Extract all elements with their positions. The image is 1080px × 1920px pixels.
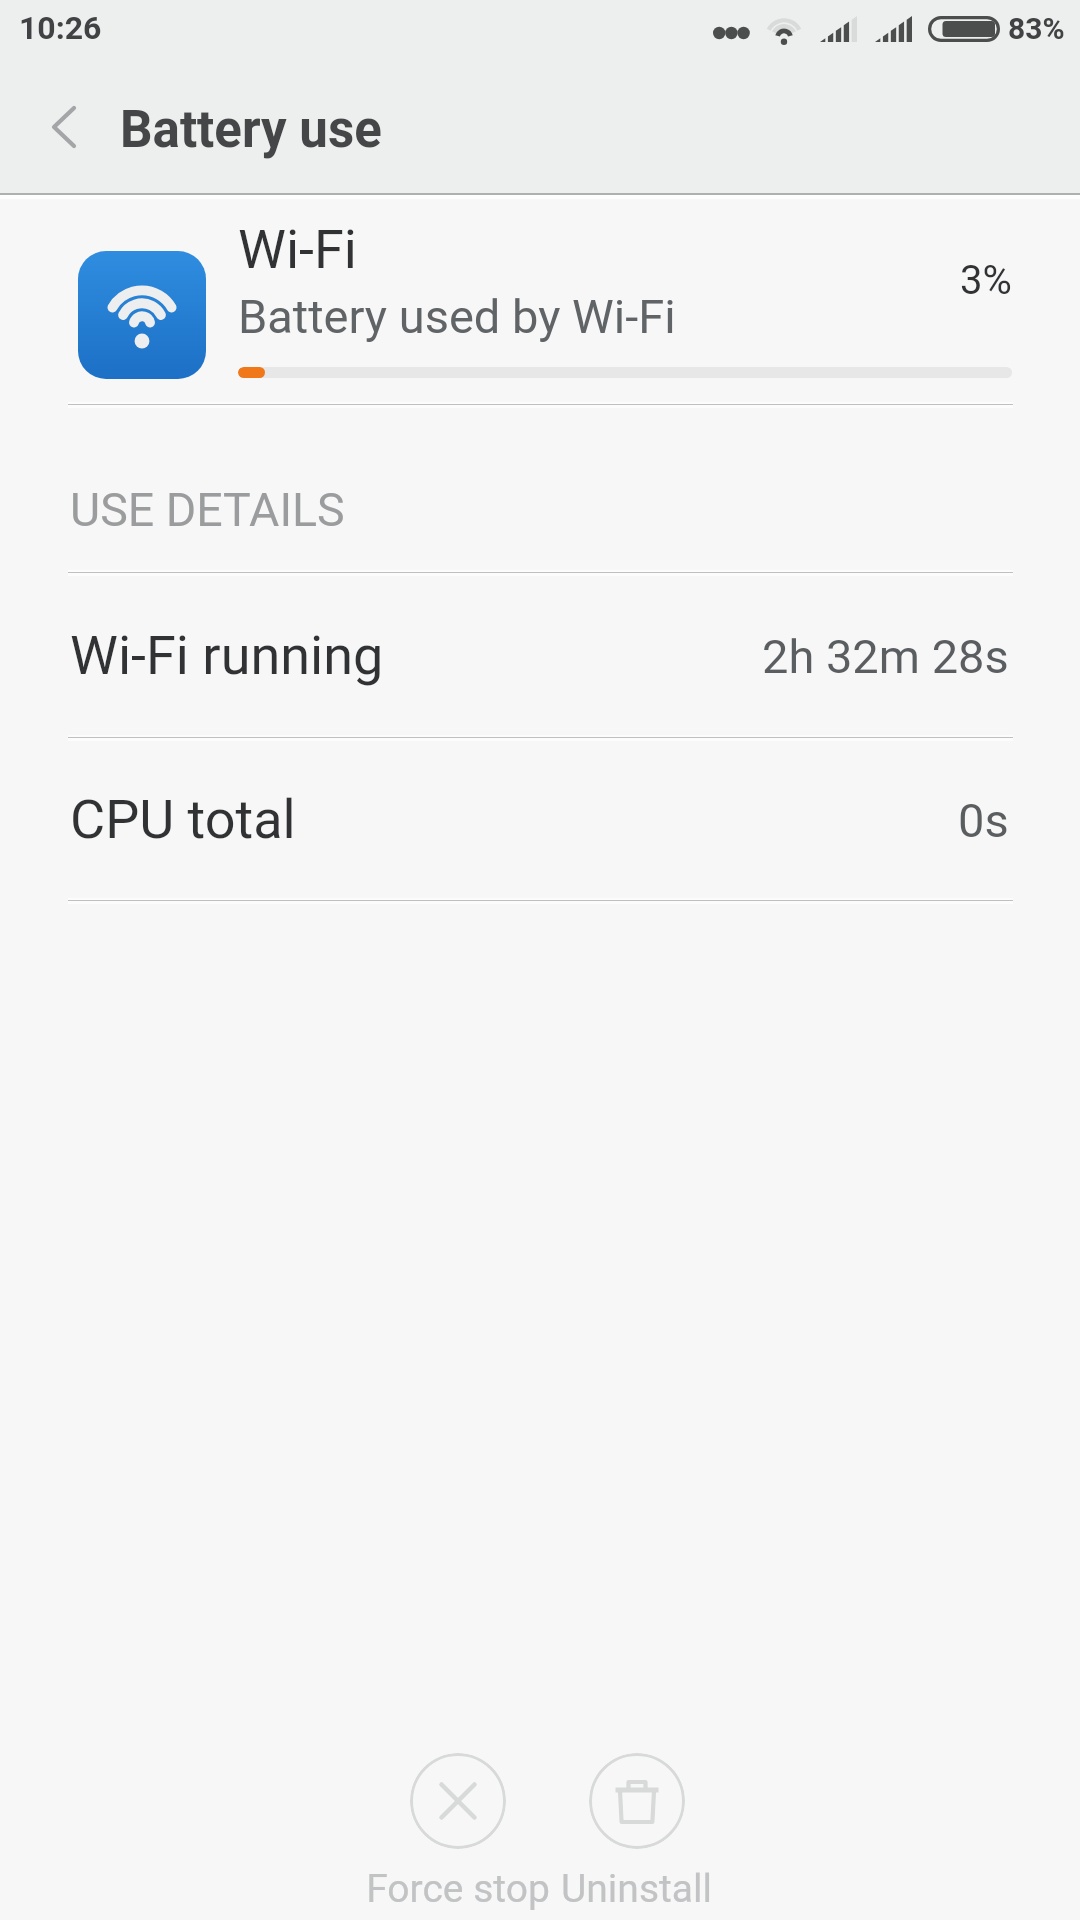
staticText: Force stop [366, 1866, 550, 1912]
button[interactable]: Wi-Fi [0, 193, 1080, 403]
staticText: Wi-Fi running [70, 624, 384, 687]
button[interactable]: Uninstall [506, 1753, 766, 1920]
staticText: Battery used by Wi-Fi [238, 289, 676, 344]
staticText: Battery use [120, 100, 382, 160]
staticText: 0s [958, 793, 1009, 848]
staticText: CPU total [70, 788, 296, 851]
button[interactable]: Back [20, 83, 108, 171]
staticText: USE DETAILS [70, 483, 345, 537]
staticText: 3% [960, 257, 1012, 304]
staticText: 83% [1008, 11, 1065, 46]
button[interactable]: Force stop [328, 1753, 588, 1920]
button[interactable]: CPU total [0, 736, 1080, 899]
staticText: 2h 32m 28s [762, 629, 1009, 684]
staticText: 10:26 [19, 9, 102, 47]
staticText: Wi-Fi [238, 218, 357, 281]
staticText: Uninstall [561, 1866, 712, 1912]
button[interactable]: Wi-Fi running [0, 571, 1080, 736]
